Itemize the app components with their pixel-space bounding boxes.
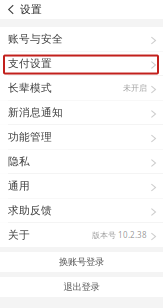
- staticText: 关于: [8, 228, 30, 241]
- button[interactable]: 支付设置: [0, 51, 163, 75]
- button[interactable]: Back: [0, 0, 20, 19]
- staticText: 通用: [8, 179, 30, 192]
- button[interactable]: 求助反馈: [0, 198, 163, 222]
- staticText: 未开启: [123, 83, 147, 93]
- staticText: 隐私: [8, 155, 30, 168]
- button[interactable]: 功能管理: [0, 125, 163, 149]
- button[interactable]: 账号与安全: [0, 27, 163, 51]
- staticText: 退出登录: [63, 281, 99, 293]
- button[interactable]: 通用: [0, 174, 163, 198]
- staticText: 功能管理: [8, 130, 52, 143]
- button[interactable]: 新消息通知: [0, 100, 163, 124]
- staticText: 换账号登录: [59, 256, 104, 268]
- button[interactable]: 退出登录: [0, 277, 163, 297]
- button[interactable]: 隐私: [0, 149, 163, 173]
- staticText: 设置: [20, 3, 42, 16]
- staticText: 新消息通知: [8, 106, 63, 119]
- button[interactable]: 关于: [0, 223, 163, 247]
- button[interactable]: 长辈模式: [0, 76, 163, 100]
- staticText: 账号与安全: [8, 32, 63, 45]
- staticText: 求助反馈: [8, 204, 52, 217]
- staticText: 支付设置: [8, 57, 52, 70]
- button[interactable]: 换账号登录: [0, 252, 163, 272]
- staticText: 长辈模式: [8, 81, 52, 94]
- staticText: 版本号 10.2.38: [92, 230, 147, 240]
